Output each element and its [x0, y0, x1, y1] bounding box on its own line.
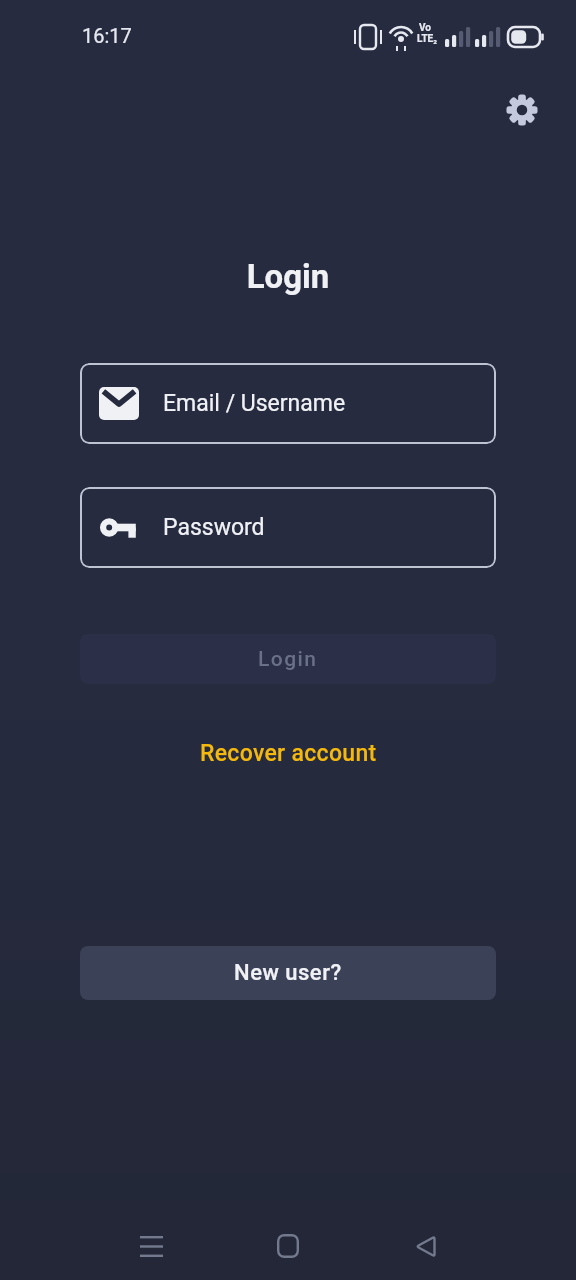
staticText: LTE₂ — [417, 33, 437, 45]
staticText: New user? — [234, 960, 342, 986]
button[interactable]: Login — [80, 634, 496, 684]
button[interactable] — [498, 86, 546, 134]
staticText: Recover account — [200, 740, 377, 767]
staticText: Login — [258, 647, 318, 672]
staticText: Email / Username — [163, 390, 346, 417]
button[interactable]: Recover account — [168, 731, 408, 775]
staticText: Vo — [419, 22, 431, 34]
button[interactable] — [105, 1216, 197, 1276]
button[interactable]: Email / Username — [80, 363, 496, 444]
button[interactable] — [242, 1216, 334, 1276]
staticText: Login — [0, 257, 576, 296]
button[interactable]: New user? — [80, 946, 496, 1000]
staticText: Password — [163, 514, 265, 541]
staticText: 16:17 — [82, 24, 132, 47]
button[interactable]: Password — [80, 487, 496, 568]
button[interactable] — [379, 1216, 471, 1276]
